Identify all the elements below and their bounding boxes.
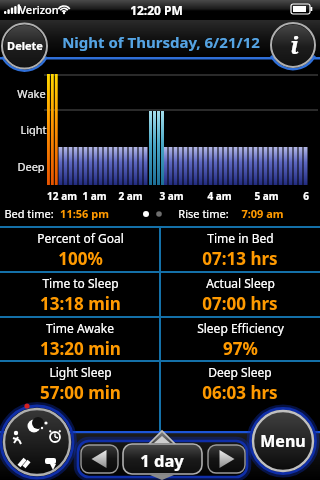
staticText: Delete bbox=[7, 38, 43, 53]
staticText: Wake bbox=[17, 86, 46, 100]
staticText: 1 day bbox=[140, 449, 184, 471]
staticText: 5 am bbox=[254, 189, 279, 202]
staticText: 3 am bbox=[159, 189, 184, 202]
staticText: 12 am bbox=[47, 189, 77, 202]
staticText: 4 am bbox=[207, 189, 232, 202]
staticText: Light bbox=[20, 122, 47, 136]
staticText: 13:20 min bbox=[40, 337, 121, 359]
staticText: Light Sleep bbox=[49, 364, 112, 380]
staticText: Actual Sleep bbox=[206, 275, 275, 291]
staticText: 6 bbox=[303, 189, 309, 202]
staticText: 11:56 pm bbox=[60, 206, 109, 220]
staticText: Menu bbox=[260, 430, 306, 452]
staticText: Percent of Goal bbox=[37, 230, 124, 246]
staticText: Night of Thursday, 6/21/12 bbox=[62, 32, 260, 52]
staticText: 97% bbox=[223, 337, 258, 359]
staticText: Sleep Efficiency bbox=[197, 320, 284, 336]
staticText: Verizon bbox=[19, 2, 59, 16]
button[interactable] bbox=[208, 445, 245, 473]
staticText: Time Awake bbox=[46, 320, 114, 336]
staticText: 57:00 min bbox=[40, 381, 121, 403]
staticText: 100% bbox=[58, 247, 103, 269]
staticText: Deep bbox=[17, 159, 45, 173]
staticText: 1 am bbox=[82, 189, 107, 202]
staticText: 06:03 hrs bbox=[202, 381, 278, 403]
staticText: 07:00 hrs bbox=[202, 292, 278, 314]
button[interactable] bbox=[81, 445, 118, 473]
staticText: i bbox=[290, 28, 299, 61]
staticText: Time to Sleep bbox=[42, 275, 119, 291]
staticText: 7:09 am bbox=[241, 206, 284, 220]
staticText: Bed time: bbox=[4, 206, 54, 220]
staticText: Time in Bed bbox=[207, 230, 274, 246]
button[interactable]: Delete bbox=[2, 23, 48, 68]
staticText: Rise time: bbox=[178, 206, 229, 220]
staticText: 2 am bbox=[118, 189, 143, 202]
button[interactable]: Menu bbox=[254, 412, 312, 470]
staticText: 07:13 hrs bbox=[202, 247, 278, 269]
button[interactable]: 1 day bbox=[123, 445, 201, 474]
button[interactable] bbox=[4, 409, 70, 475]
staticText: 12:20 PM bbox=[130, 2, 183, 16]
staticText: 13:18 min bbox=[40, 292, 121, 314]
button[interactable]: i bbox=[272, 22, 316, 66]
staticText: Deep Sleep bbox=[208, 364, 272, 380]
